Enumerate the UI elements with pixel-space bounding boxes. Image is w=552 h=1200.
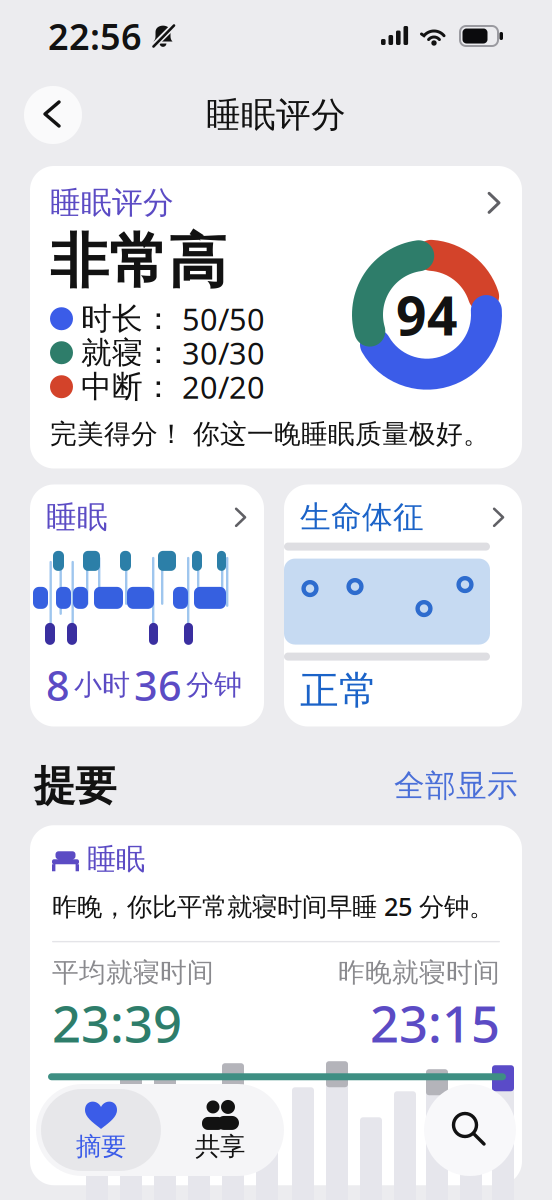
button[interactable]: 生命体征 <box>284 484 522 726</box>
staticText: 36 <box>134 658 182 712</box>
staticText: 分钟 <box>186 668 242 702</box>
button[interactable]: 全部显示 <box>394 767 518 805</box>
staticText: 时长： <box>81 300 174 338</box>
staticText: 睡眠 <box>87 841 145 877</box>
staticText: 20/20 <box>182 366 265 407</box>
staticText: 就寝： <box>81 334 174 372</box>
staticText: 22:56 <box>48 12 142 60</box>
staticText: 共享 <box>195 1131 245 1162</box>
staticText: 94 <box>396 279 458 350</box>
staticText: 提要 <box>34 760 116 811</box>
button[interactable]: Back <box>24 86 82 144</box>
staticText: 昨晚就寝时间 <box>338 956 500 989</box>
staticText: 生命体征 <box>300 498 424 536</box>
staticText: 小时 <box>74 668 130 702</box>
staticText: 睡眠 <box>46 498 108 536</box>
button[interactable]: 睡眠 <box>30 484 264 726</box>
staticText: 昨晚，你比平常就寝时间早睡 25 分钟。 <box>52 889 494 923</box>
button[interactable]: 共享 <box>161 1089 279 1171</box>
staticText: 完美得分！ 你这一晚睡眠质量极好。 <box>50 418 490 450</box>
button[interactable]: Search <box>424 1084 516 1176</box>
staticText: 8 <box>46 658 70 712</box>
button[interactable]: 睡眠评分 <box>30 166 522 468</box>
staticText: 50/50 <box>182 298 265 339</box>
staticText: 全部显示 <box>394 767 518 805</box>
button[interactable]: 摘要 <box>41 1089 161 1171</box>
staticText: 正常 <box>300 667 378 714</box>
staticText: 非常高 <box>50 226 227 298</box>
staticText: 平均就寝时间 <box>52 956 214 989</box>
staticText: 摘要 <box>76 1131 126 1162</box>
staticText: 23:15 <box>370 989 500 1056</box>
staticText: 睡眠评分 <box>206 94 346 136</box>
staticText: 30/30 <box>182 332 265 373</box>
staticText: 23:39 <box>52 989 182 1056</box>
staticText: 中断： <box>81 368 174 406</box>
staticText: 睡眠评分 <box>50 184 174 222</box>
